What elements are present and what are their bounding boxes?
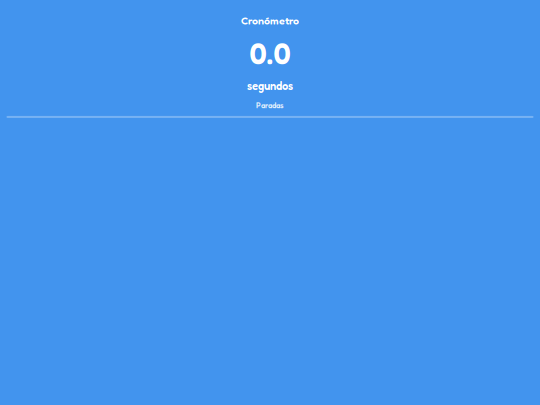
button[interactable]: 0.0 [247, 27, 293, 93]
staticText: 0.0 [249, 35, 290, 71]
staticText: Paradas [256, 101, 284, 110]
staticText: Cronómetro [241, 14, 299, 27]
staticText: segundos [247, 79, 293, 93]
